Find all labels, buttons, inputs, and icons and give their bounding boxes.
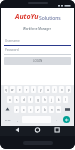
staticText: u [47, 88, 49, 92]
button[interactable]: u [45, 86, 50, 93]
staticText: s [16, 98, 18, 102]
staticText: x [23, 108, 25, 112]
button[interactable]: f [28, 96, 33, 103]
staticText: b [44, 108, 46, 112]
button[interactable]: x [21, 106, 26, 113]
button[interactable]: LOGIN [4, 57, 71, 65]
staticText: d [23, 98, 25, 102]
staticText: k [58, 98, 60, 102]
button[interactable]: v [35, 106, 40, 113]
staticText: w [11, 88, 14, 92]
button[interactable]: o [59, 86, 64, 93]
button[interactable] [50, 126, 75, 136]
staticText: Workforce Manager [23, 27, 52, 31]
button[interactable]: z [14, 106, 19, 113]
staticText: p [68, 88, 70, 92]
button[interactable]: ?123 [4, 116, 12, 123]
button[interactable]: g [35, 96, 40, 103]
staticText: n [51, 108, 53, 112]
staticText: l [65, 98, 66, 102]
button[interactable]: b [42, 106, 47, 113]
staticText: ?123 [5, 118, 11, 121]
button[interactable]: l [63, 96, 68, 103]
staticText: c [30, 108, 32, 112]
button[interactable]: n [49, 106, 54, 113]
staticText: a [9, 98, 11, 102]
button[interactable]: j [49, 96, 54, 103]
staticText: j [51, 98, 52, 102]
button[interactable]: k [56, 96, 61, 103]
button[interactable]: t [31, 86, 36, 93]
staticText: g [37, 98, 39, 102]
button[interactable]: i [52, 86, 57, 93]
button[interactable]: d [21, 96, 26, 103]
button[interactable]: m [56, 106, 61, 113]
button[interactable] [0, 126, 25, 136]
staticText: v [37, 108, 39, 112]
staticText: , [17, 118, 18, 122]
button[interactable]: h [42, 96, 47, 103]
button[interactable]: e [17, 86, 22, 93]
staticText: Solutions [39, 15, 61, 22]
staticText: y [40, 88, 42, 92]
button[interactable]: s [14, 96, 19, 103]
staticText: z [16, 108, 18, 112]
button[interactable] [4, 106, 11, 113]
staticText: e [19, 88, 21, 92]
button[interactable]: c [28, 106, 33, 113]
staticText: Password [5, 48, 19, 52]
button[interactable]: , [14, 116, 20, 123]
staticText: o [61, 88, 63, 92]
staticText: h [44, 98, 46, 102]
staticText: AutoYu [15, 12, 39, 22]
button[interactable]: w [10, 86, 15, 93]
staticText: f [30, 98, 32, 102]
button[interactable]: q [4, 86, 8, 93]
staticText: t [33, 88, 35, 92]
staticText: Username [5, 39, 20, 43]
button[interactable]: p [66, 86, 71, 93]
button[interactable] [64, 106, 71, 113]
staticText: LOGIN [33, 59, 43, 63]
button[interactable] [63, 116, 70, 123]
button[interactable]: a [7, 96, 12, 103]
staticText: r [26, 88, 28, 92]
button[interactable]: Username [1, 39, 74, 46]
staticText: i [54, 88, 55, 92]
staticText: q [5, 88, 7, 92]
staticText: m [57, 108, 60, 112]
button[interactable]: y [38, 86, 43, 93]
staticText: . [56, 118, 57, 122]
button[interactable]: Password [1, 48, 74, 55]
button[interactable]: r [24, 86, 29, 93]
button[interactable] [25, 126, 50, 136]
